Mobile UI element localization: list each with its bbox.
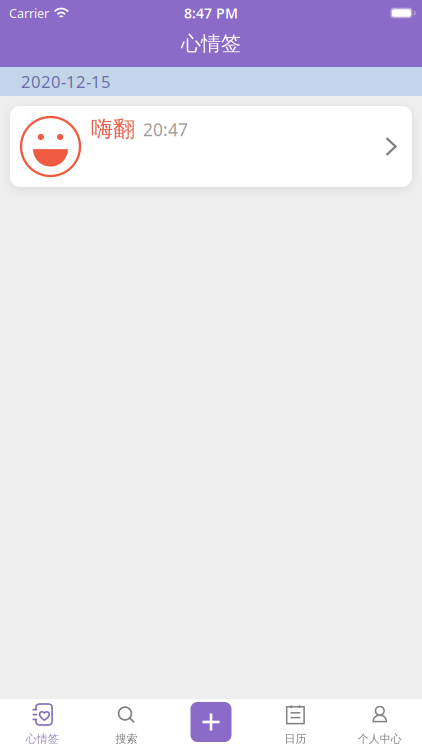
staticText: 8:47 PM: [184, 3, 238, 23]
button[interactable]: 日历: [253, 699, 338, 750]
staticText: 心情签: [181, 31, 241, 56]
button[interactable]: 个人中心: [338, 699, 422, 750]
staticText: 嗨翻: [91, 115, 135, 143]
button[interactable]: 嗨翻: [10, 106, 412, 187]
staticText: 个人中心: [358, 732, 402, 746]
staticText: 搜索: [116, 732, 138, 746]
staticText: 日历: [284, 732, 306, 746]
staticText: Carrier: [9, 4, 49, 22]
button[interactable]: Add entry: [169, 699, 253, 750]
button[interactable]: 搜索: [84, 699, 169, 750]
staticText: 20:47: [143, 118, 188, 141]
button[interactable]: 心情签: [0, 699, 84, 750]
staticText: 心情签: [26, 732, 59, 746]
staticText: 2020-12-15: [21, 70, 111, 93]
